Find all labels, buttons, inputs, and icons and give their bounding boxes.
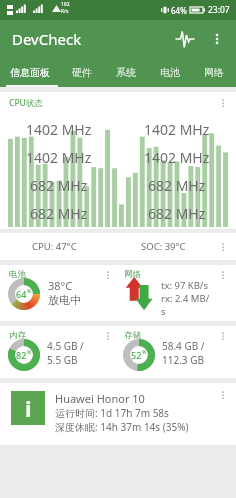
staticText: 信息面板 — [10, 66, 50, 79]
staticText: 64% — [171, 5, 187, 16]
button[interactable]: More options — [215, 95, 231, 111]
staticText: tx: 97 KB/s — [161, 279, 208, 292]
staticText: 存储 — [124, 330, 141, 341]
button[interactable]: 信息面板 — [0, 58, 60, 87]
button[interactable]: More options — [100, 267, 116, 283]
staticText: 38°C — [48, 278, 73, 293]
staticText: 放电中 — [48, 293, 81, 307]
staticText: 112.3 GB — [162, 353, 204, 367]
staticText: Huawei Honor 10 — [55, 391, 145, 406]
button[interactable]: More options — [100, 328, 116, 344]
staticText: 系统 — [116, 66, 136, 79]
staticText: 1402 MHz — [26, 148, 92, 167]
staticText: % — [142, 349, 147, 356]
staticText: % — [27, 349, 32, 356]
staticText: rx: 2.4 MB/ — [161, 292, 210, 305]
staticText: 682 MHz — [30, 176, 88, 195]
staticText: 1402 MHz — [26, 120, 92, 139]
staticText: 52 — [131, 349, 142, 361]
staticText: s — [161, 305, 166, 318]
staticText: 64 — [16, 288, 27, 300]
staticText: 电池 — [9, 269, 26, 280]
staticText: 102 K/s — [61, 1, 70, 14]
staticText: 网络 — [124, 269, 141, 280]
button[interactable]: Monitor — [168, 22, 202, 56]
staticText: 682 MHz — [30, 204, 88, 223]
staticText: 82 — [16, 349, 27, 361]
staticText: CPU状态 — [9, 97, 43, 109]
button[interactable]: More options — [215, 387, 231, 403]
button[interactable]: More options — [215, 328, 231, 344]
staticText: % — [27, 288, 32, 295]
staticText: 682 MHz — [148, 204, 206, 223]
staticText: 网络 — [204, 66, 224, 79]
staticText: 58.4 GB / — [162, 339, 205, 353]
staticText: 1402 MHz — [144, 120, 210, 139]
staticText: DevCheck — [12, 29, 82, 49]
staticText: 内存 — [9, 330, 26, 341]
staticText: 682 MHz — [148, 176, 206, 195]
staticText: 4.5 GB / — [47, 339, 84, 353]
staticText: 1402 MHz — [144, 148, 210, 167]
button[interactable]: i — [0, 383, 236, 445]
staticText: 运行时间: 1d 17h 7m 58s — [55, 406, 169, 420]
button[interactable]: More options — [215, 267, 231, 283]
button[interactable]: More options — [215, 239, 231, 255]
button[interactable]: 网络 — [192, 58, 236, 87]
staticText: 电池 — [160, 66, 180, 79]
staticText: i — [25, 393, 32, 423]
button[interactable]: 系统 — [104, 58, 148, 87]
staticText: 深度休眠: 14h 37m 14s (35%) — [55, 420, 189, 434]
staticText: SOC: 39°C — [141, 240, 186, 253]
staticText: CPU: 47°C — [32, 240, 77, 253]
button[interactable]: 硬件 — [60, 58, 104, 87]
staticText: 5.5 GB — [47, 353, 78, 367]
staticText: 23:07 — [208, 4, 230, 16]
button[interactable]: More options — [202, 24, 232, 54]
button[interactable]: 电池 — [148, 58, 192, 87]
staticText: 硬件 — [72, 66, 92, 79]
